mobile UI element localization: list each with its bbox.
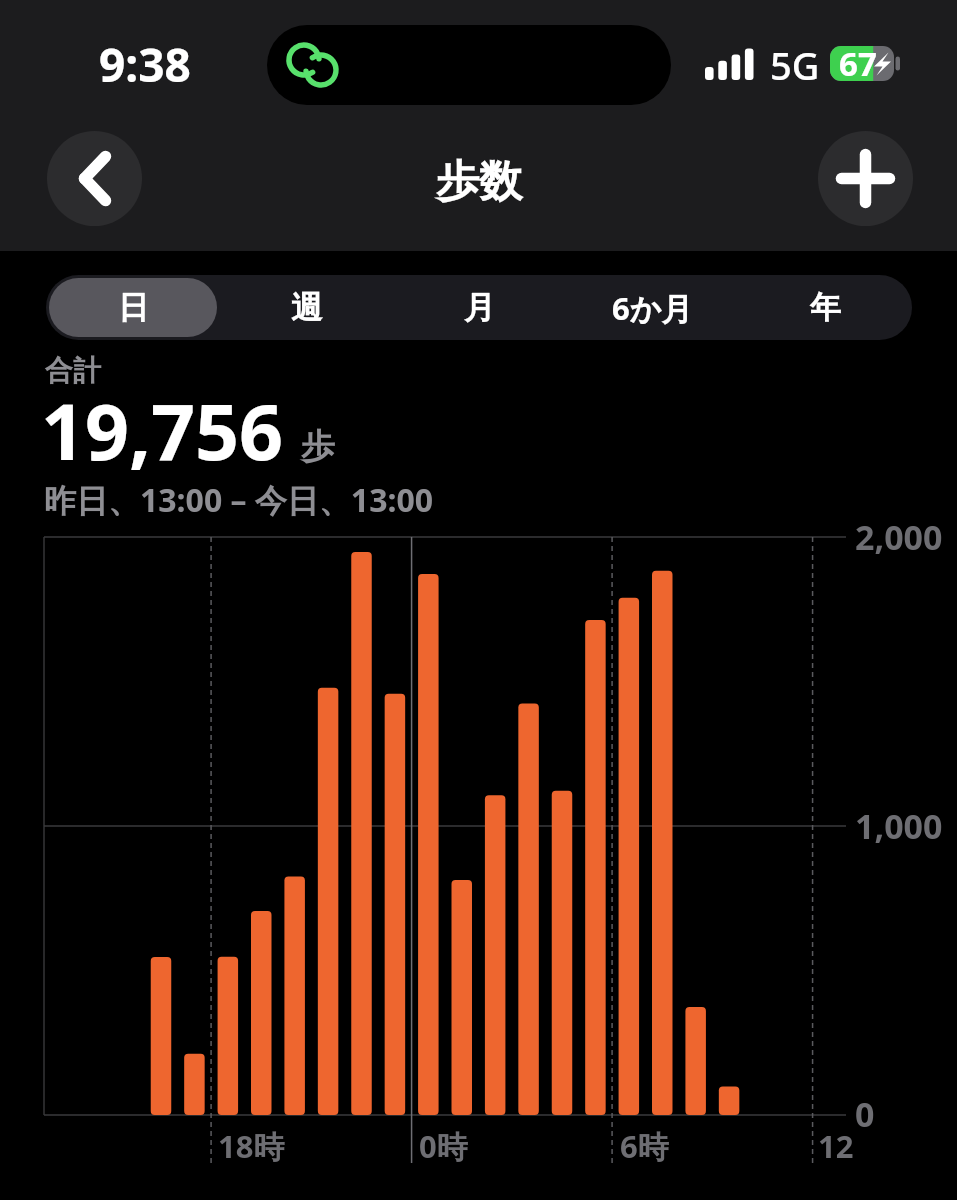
staticText: 歩 — [301, 425, 335, 468]
staticText: 18時 — [218, 1125, 285, 1167]
staticText: 日 — [118, 288, 149, 327]
staticText: 週 — [291, 288, 322, 327]
staticText: 年 — [810, 288, 841, 327]
staticText: 月 — [464, 288, 495, 327]
staticText: 67 — [839, 41, 877, 76]
staticText: 昨日、13:00 – 今日、13:00 — [44, 478, 434, 522]
button[interactable]: 日 — [49, 278, 217, 337]
button[interactable]: 年 — [742, 278, 909, 337]
staticText: 12 — [818, 1125, 854, 1167]
button[interactable]: 月 — [396, 278, 563, 337]
staticText: 2,000 — [855, 514, 943, 560]
staticText: 9:38 — [99, 33, 191, 96]
staticText: 歩数 — [436, 155, 522, 209]
staticText: 合計 — [45, 353, 101, 388]
staticText: 19,756 — [41, 378, 284, 483]
button[interactable]: 週 — [223, 278, 390, 337]
staticText: 1,000 — [855, 803, 943, 849]
staticText: 0 — [855, 1091, 875, 1137]
button[interactable]: Back — [47, 131, 142, 226]
staticText: 0時 — [419, 1125, 468, 1167]
staticText: 5G — [770, 39, 820, 91]
button[interactable]: Add — [818, 131, 913, 226]
staticText: 6時 — [620, 1125, 669, 1167]
button[interactable]: 6か月 — [569, 278, 736, 337]
staticText: 6か月 — [612, 287, 693, 329]
